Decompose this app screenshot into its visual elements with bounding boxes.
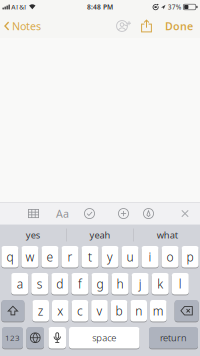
staticText: q [6,249,13,265]
staticText: AT&T [11,3,27,11]
button[interactable]: 123 [2,327,23,348]
button[interactable]: Notes [0,19,41,33]
button[interactable]: o [162,246,179,267]
button[interactable]: j [132,273,149,294]
button[interactable]: Share [141,19,152,32]
button[interactable]: Dismiss Keyboard [181,209,189,217]
button[interactable]: n [130,300,147,321]
staticText: m [153,303,164,319]
button[interactable]: Next Keyboard [26,327,44,348]
staticText: r [67,249,72,265]
staticText: o [167,249,174,265]
staticText: 8:48 PM [87,3,113,11]
button[interactable]: y [101,246,118,267]
staticText: return [160,332,187,344]
staticText: i [149,249,152,265]
button[interactable]: r [61,246,78,267]
button[interactable]: q [1,246,18,267]
staticText: p [187,249,194,265]
staticText: h [117,276,124,292]
button[interactable]: i [141,246,158,267]
button[interactable]: Markup [143,208,154,219]
button[interactable]: d [51,273,68,294]
staticText: Aa [56,206,69,221]
button[interactable]: t [81,246,98,267]
staticText: j [139,276,142,292]
staticText: t [88,249,92,265]
button[interactable]: yeah [67,224,133,246]
staticText: z [38,303,44,319]
staticText: c [77,303,83,319]
staticText: d [56,276,63,292]
staticText: n [135,303,142,319]
staticText: yes [26,229,40,241]
staticText: u [126,249,133,265]
button[interactable]: Insert Table [28,209,39,218]
button[interactable]: Delete [175,300,199,321]
staticText: w [25,249,34,265]
button[interactable]: return [149,327,198,348]
button[interactable]: k [152,273,169,294]
staticText: space [92,332,116,344]
staticText: Done [165,19,193,33]
staticText: k [157,276,163,292]
button[interactable]: space [69,327,139,348]
button[interactable]: Done [165,19,200,33]
button[interactable]: Checklist [84,208,95,219]
staticText: yeah [89,229,110,241]
button[interactable]: p [182,246,199,267]
button[interactable]: Add Attachment [118,208,129,219]
button[interactable]: h [111,273,129,294]
button[interactable]: w [21,246,38,267]
button[interactable]: x [52,300,69,321]
staticText: a [17,276,23,292]
staticText: Notes [12,19,41,33]
button[interactable]: b [111,300,127,321]
button[interactable]: f [71,273,88,294]
staticText: 123 [5,332,20,343]
staticText: g [96,276,103,292]
staticText: f [78,276,82,292]
staticText: x [57,303,63,319]
button[interactable]: yes [0,224,66,246]
staticText: s [37,276,43,292]
button[interactable]: e [41,246,58,267]
button[interactable]: Dictate [48,327,66,348]
button[interactable]: Shift [1,300,24,321]
staticText: v [96,303,102,319]
staticText: what [157,229,178,241]
button[interactable]: Formatting [56,206,69,221]
button[interactable]: Add People [116,20,131,32]
staticText: l [179,276,182,292]
button[interactable]: g [91,273,109,294]
button[interactable]: c [72,300,88,321]
button[interactable]: m [150,300,167,321]
staticText: e [46,249,53,265]
staticText: b [116,303,123,319]
staticText: 37% [168,3,182,11]
button[interactable]: s [31,273,48,294]
button[interactable]: what [134,224,200,246]
staticText: y [107,249,113,265]
button[interactable]: a [11,273,28,294]
button[interactable]: v [91,300,108,321]
button[interactable]: u [121,246,138,267]
button[interactable]: z [32,300,49,321]
button[interactable]: l [172,273,189,294]
